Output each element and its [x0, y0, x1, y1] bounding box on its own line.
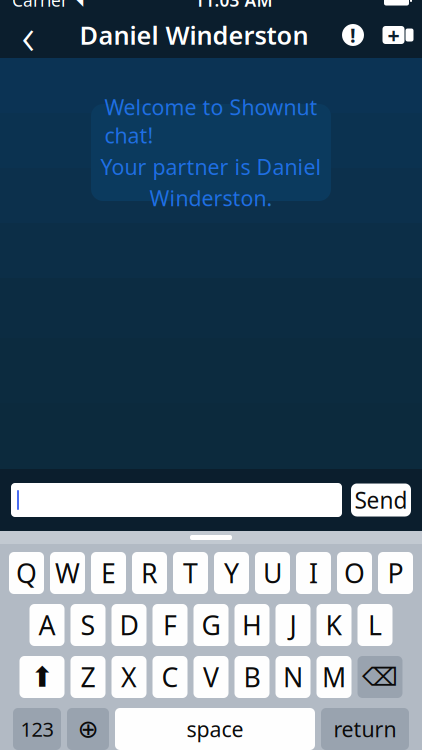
staticText: B — [243, 659, 260, 695]
button[interactable]: O — [337, 552, 372, 594]
staticText: O — [344, 555, 365, 591]
staticText: ! — [350, 22, 356, 48]
staticText: ⊕ — [77, 715, 98, 743]
button[interactable]: U — [255, 552, 290, 594]
staticText: ⬆ — [30, 661, 53, 693]
button[interactable]: Start video call — [374, 12, 422, 58]
staticText: I — [309, 555, 318, 591]
button[interactable]: T — [173, 552, 208, 594]
button[interactable]: Back — [0, 12, 56, 58]
staticText: S — [80, 607, 95, 643]
staticText: Your partner is Daniel — [100, 152, 321, 181]
button[interactable]: S — [70, 604, 105, 646]
button[interactable]: G — [193, 604, 228, 646]
button[interactable]: C — [152, 656, 187, 698]
staticText: Carrier — [12, 0, 68, 11]
staticText: N — [283, 659, 303, 695]
button[interactable]: D — [111, 604, 146, 646]
button[interactable]: I — [296, 552, 331, 594]
staticText: J — [289, 607, 296, 643]
button[interactable]: Send — [351, 483, 411, 516]
button[interactable]: space — [115, 708, 315, 750]
staticText: Z — [80, 659, 95, 695]
button[interactable]: R — [132, 552, 167, 594]
staticText: K — [325, 607, 342, 643]
staticText: M — [322, 659, 346, 695]
button[interactable]: V — [193, 656, 228, 698]
staticText: H — [242, 607, 262, 643]
button[interactable]: K — [316, 604, 351, 646]
staticText: Send — [354, 485, 407, 515]
staticText: E — [101, 555, 116, 591]
staticText: P — [387, 555, 403, 591]
staticText: ⌫ — [362, 663, 398, 691]
staticText: X — [121, 659, 137, 695]
staticText: ◥ — [72, 0, 83, 8]
button[interactable]: Y — [214, 552, 249, 594]
staticText: space — [186, 715, 243, 743]
staticText: V — [203, 659, 219, 695]
button[interactable]: L — [357, 604, 392, 646]
button[interactable]: E — [91, 552, 126, 594]
staticText: F — [163, 607, 177, 643]
button[interactable]: Delete — [357, 656, 402, 698]
staticText: W — [55, 555, 80, 591]
staticText: Q — [16, 555, 37, 591]
staticText: Welcome to Shownut chat! — [104, 93, 317, 149]
button[interactable]: X — [111, 656, 146, 698]
staticText: 123 — [20, 716, 53, 742]
button[interactable]: 123 — [13, 708, 61, 750]
staticText: A — [38, 607, 55, 643]
staticText: Y — [224, 555, 239, 591]
button[interactable]: return — [321, 708, 409, 750]
staticText: return — [333, 715, 396, 743]
button[interactable]: A — [29, 604, 64, 646]
button[interactable]: H — [234, 604, 269, 646]
staticText: Daniel Winderston — [79, 18, 308, 52]
staticText: T — [183, 555, 198, 591]
button[interactable]: Shift — [19, 656, 64, 698]
staticText: R — [141, 555, 158, 591]
staticText: Winderston. — [149, 184, 272, 212]
staticText: G — [201, 607, 220, 643]
button[interactable]: Z — [70, 656, 105, 698]
staticText: + — [387, 21, 399, 49]
button[interactable]: J — [275, 604, 310, 646]
button[interactable]: W — [50, 552, 85, 594]
button[interactable]: P — [378, 552, 413, 594]
button[interactable]: F — [152, 604, 187, 646]
button[interactable]: M — [316, 656, 351, 698]
button[interactable]: Report user — [332, 12, 374, 58]
staticText: L — [368, 607, 382, 643]
staticText: 11:03 AM — [194, 0, 272, 11]
button[interactable]: Q — [9, 552, 44, 594]
staticText: U — [263, 555, 282, 591]
staticText: D — [119, 607, 138, 643]
staticText: C — [161, 659, 178, 695]
button[interactable]: B — [234, 656, 269, 698]
button[interactable]: N — [275, 656, 310, 698]
button[interactable]: Next keyboard — [67, 708, 109, 750]
staticText: ‹ — [21, 1, 34, 69]
